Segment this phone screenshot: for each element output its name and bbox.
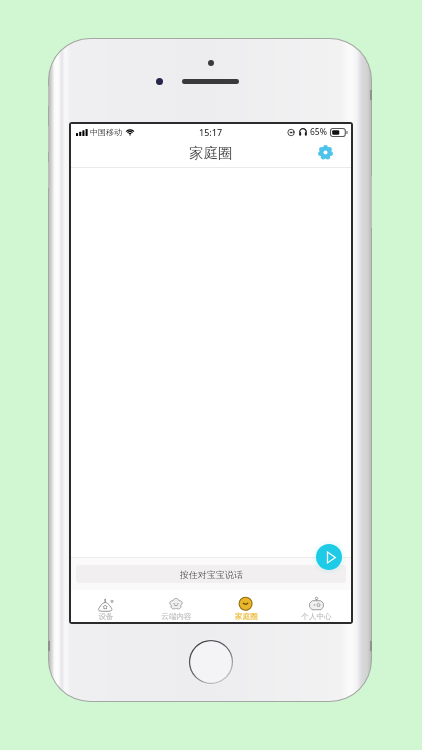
staticText: 设备: [98, 612, 114, 622]
button[interactable]: 设备: [71, 590, 141, 622]
staticText: 15:17: [199, 126, 223, 138]
button[interactable]: 按住对宝宝说话: [76, 565, 346, 583]
button[interactable]: Settings: [315, 142, 335, 162]
staticText: 按住对宝宝说话: [180, 569, 243, 580]
staticText: 家庭圈: [189, 144, 233, 162]
button[interactable]: 个人中心: [281, 590, 351, 622]
staticText: 云端内容: [161, 612, 192, 622]
staticText: 中国移动: [90, 127, 122, 137]
staticText: 个人中心: [301, 612, 332, 622]
staticText: 家庭圈: [235, 612, 258, 622]
staticText: 65%: [310, 126, 327, 138]
button[interactable]: 云端内容: [141, 590, 211, 622]
button[interactable]: Play voice message: [316, 544, 342, 570]
button[interactable]: 家庭圈: [211, 590, 281, 622]
